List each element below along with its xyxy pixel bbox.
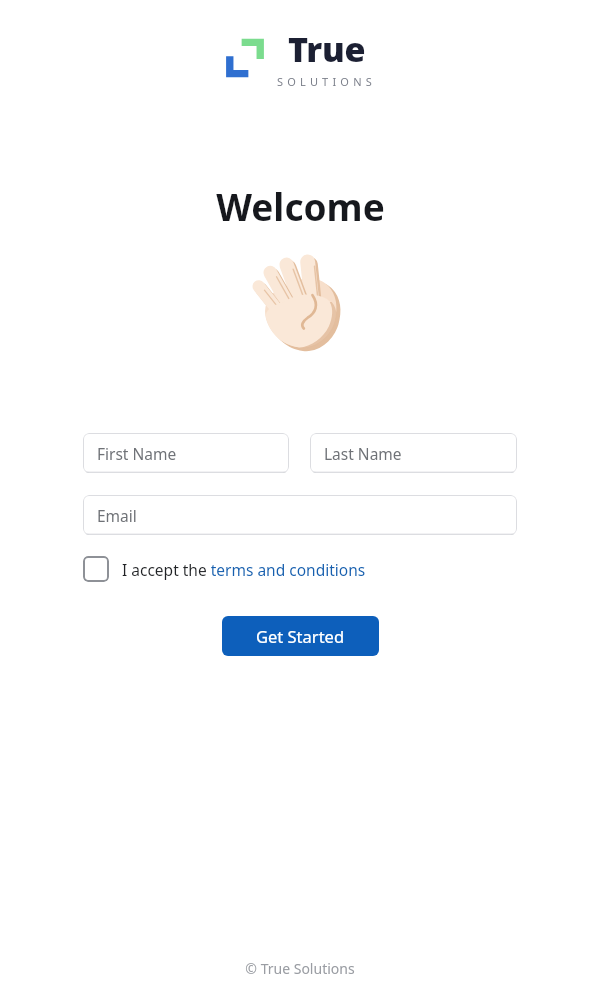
button[interactable]: Accept terms and conditions	[83, 556, 109, 582]
button[interactable]: Get Started	[222, 616, 379, 656]
staticText: True	[288, 26, 366, 72]
staticText: Get Started	[256, 625, 345, 647]
staticText: © True Solutions	[245, 959, 355, 978]
button[interactable]: I accept the terms and conditions	[122, 559, 366, 580]
staticText: Last Name	[324, 443, 402, 464]
button[interactable]: First Name	[83, 433, 289, 473]
staticText: SOLUTIONS	[277, 74, 376, 89]
staticText: I accept the terms and conditions	[122, 559, 366, 580]
button[interactable]: True	[224, 26, 376, 89]
staticText: Welcome	[216, 181, 385, 231]
button[interactable]: Email	[83, 495, 517, 535]
staticText: Email	[97, 505, 137, 526]
button[interactable]: Last Name	[310, 433, 517, 473]
staticText: First Name	[97, 443, 177, 464]
